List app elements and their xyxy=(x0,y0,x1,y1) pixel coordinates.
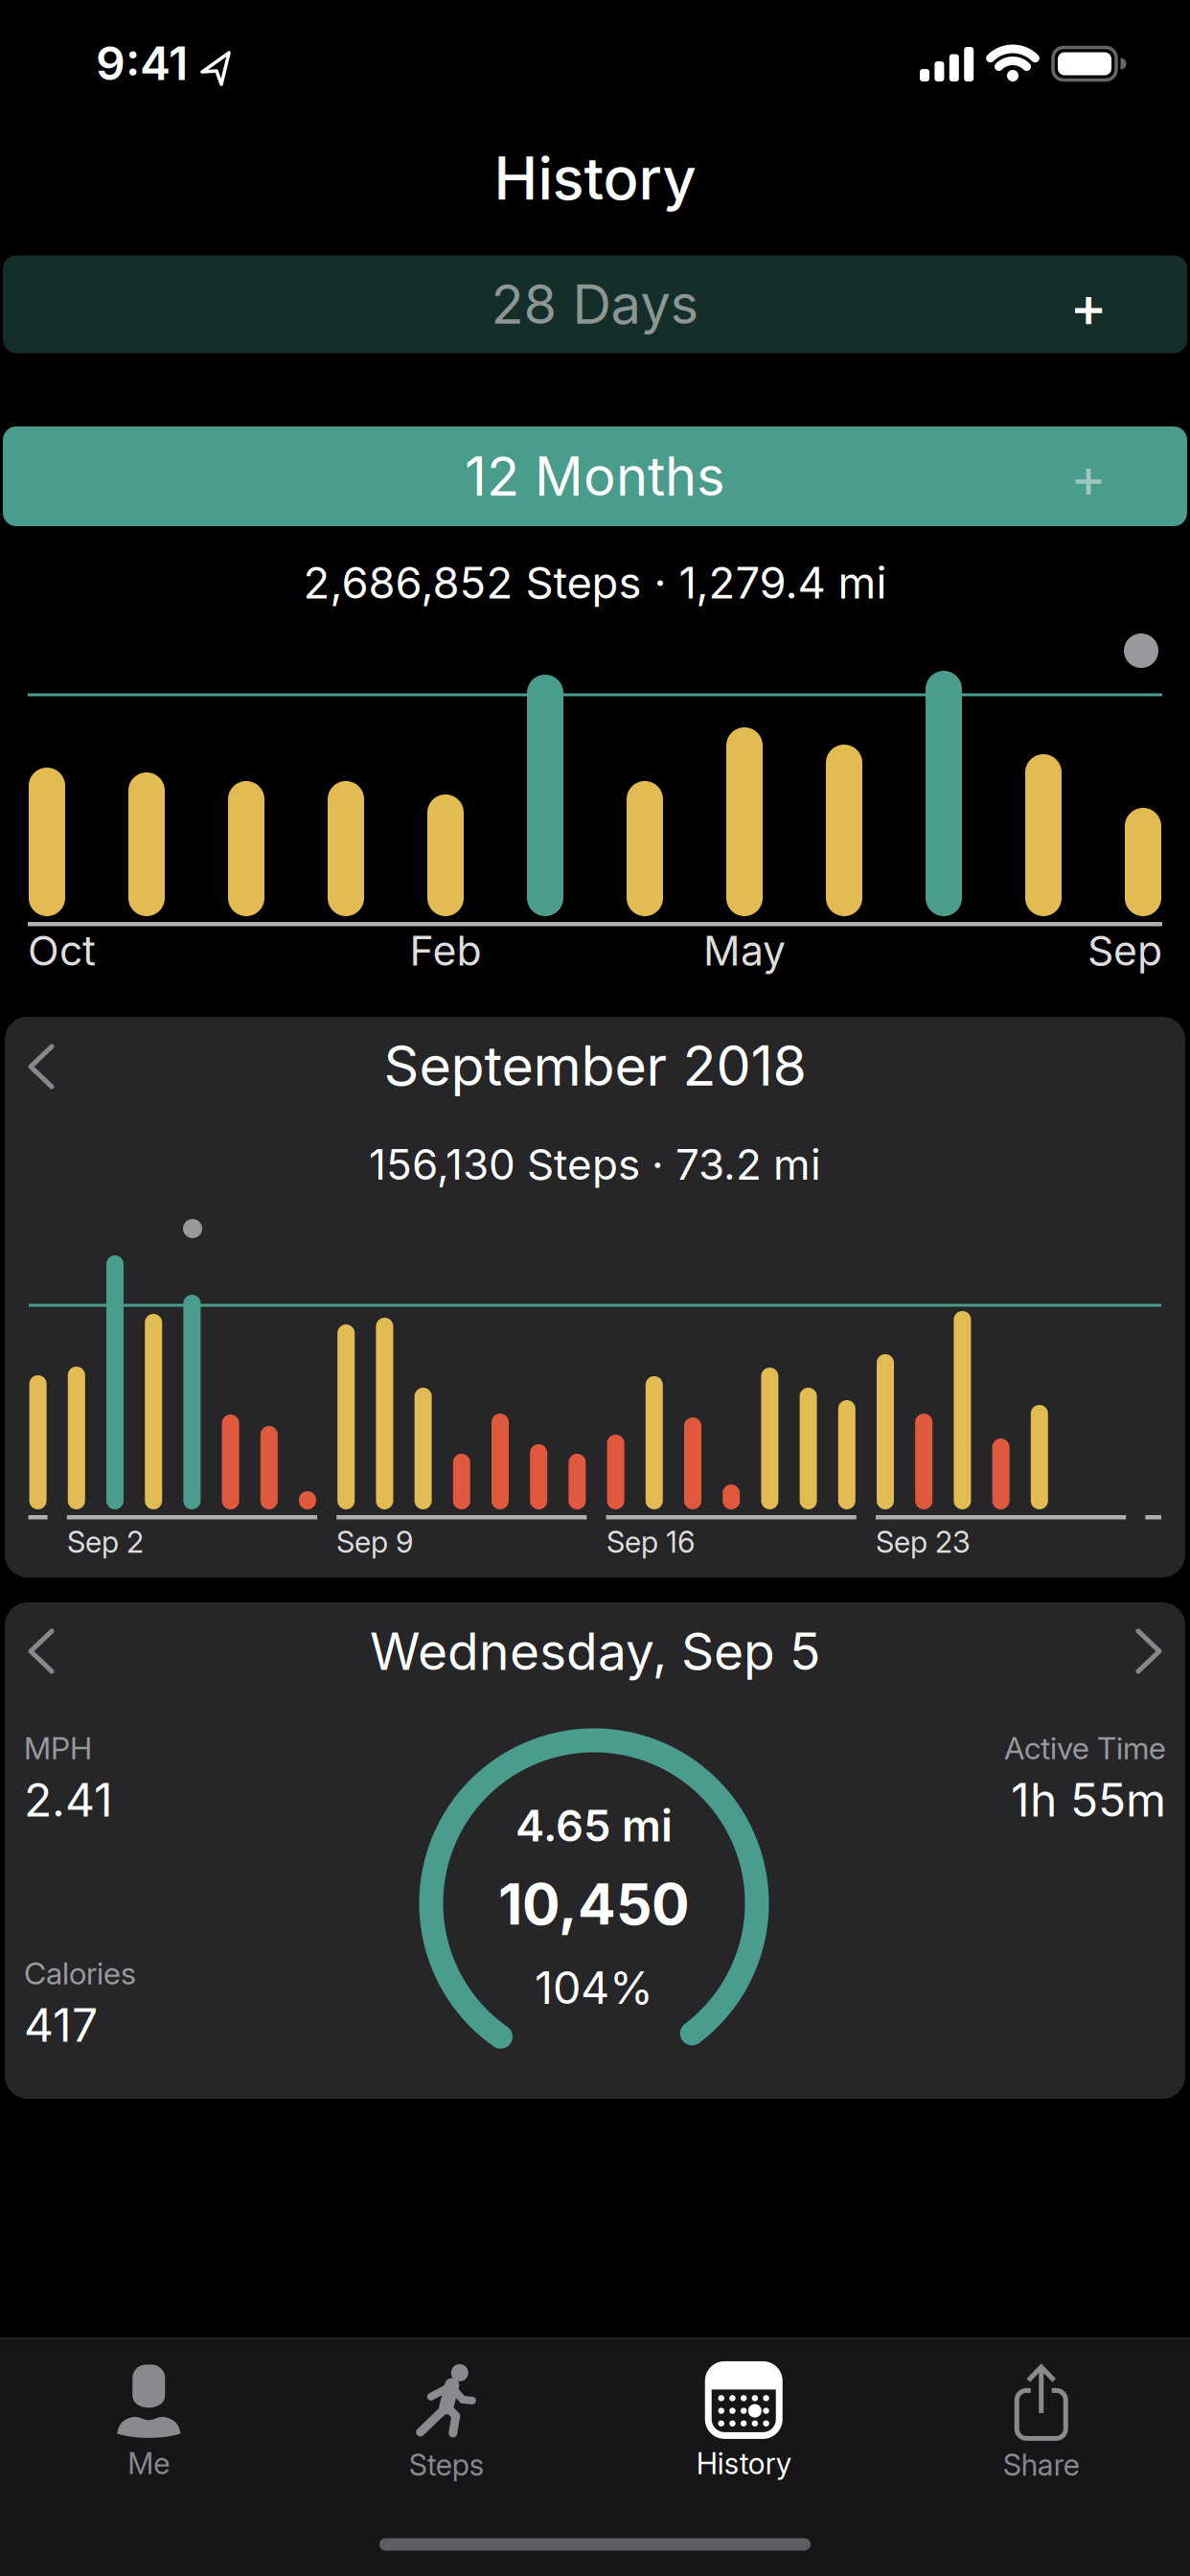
staticText: Sep 2 xyxy=(67,1525,144,1559)
button[interactable]: Share xyxy=(898,2341,1185,2504)
button[interactable]: Previous day xyxy=(17,1626,65,1676)
staticText: MPH xyxy=(24,1730,92,1766)
staticText: 417 xyxy=(24,1998,98,2052)
button[interactable]: History xyxy=(600,2341,887,2504)
staticText: Steps xyxy=(409,2447,484,2482)
button[interactable]: Next day xyxy=(1125,1626,1173,1676)
staticText: Calories xyxy=(24,1955,136,1991)
staticText: History xyxy=(696,2446,791,2481)
staticText: 2.41 xyxy=(24,1773,113,1827)
staticText: 4.65 mi xyxy=(515,1800,673,1851)
staticText: Share xyxy=(1003,2447,1080,2482)
button[interactable]: Previous month xyxy=(17,1042,65,1092)
staticText: 10,450 xyxy=(498,1871,690,1937)
staticText: 2,686,852 Steps · 1,279.4 mi xyxy=(303,557,887,608)
button[interactable]: 12 Months xyxy=(3,426,1187,526)
staticText: 1h 55m xyxy=(1011,1773,1166,1827)
staticText: May xyxy=(703,927,786,975)
button[interactable]: 28 Days xyxy=(3,255,1187,353)
staticText: 104% xyxy=(535,1961,653,2014)
staticText: Sep 23 xyxy=(876,1525,971,1559)
staticText: History xyxy=(494,144,696,213)
staticText: 12 Months xyxy=(465,445,725,508)
staticText: + xyxy=(1070,273,1107,339)
staticText: Sep xyxy=(1087,927,1162,975)
staticText: Oct xyxy=(28,927,96,975)
staticText: Active Time xyxy=(1004,1730,1166,1766)
staticText: + xyxy=(1070,445,1107,510)
staticText: September 2018 xyxy=(384,1033,806,1098)
staticText: Me xyxy=(128,2446,170,2481)
button[interactable]: Me xyxy=(5,2341,292,2504)
staticText: 28 Days xyxy=(491,273,699,336)
button[interactable]: Steps xyxy=(303,2341,590,2504)
staticText: Sep 9 xyxy=(336,1525,413,1559)
staticText: 9:41 xyxy=(96,36,188,90)
staticText: Sep 16 xyxy=(606,1525,695,1559)
staticText: Wednesday, Sep 5 xyxy=(370,1621,820,1681)
staticText: 156,130 Steps · 73.2 mi xyxy=(369,1139,821,1189)
staticText: Feb xyxy=(410,927,481,975)
